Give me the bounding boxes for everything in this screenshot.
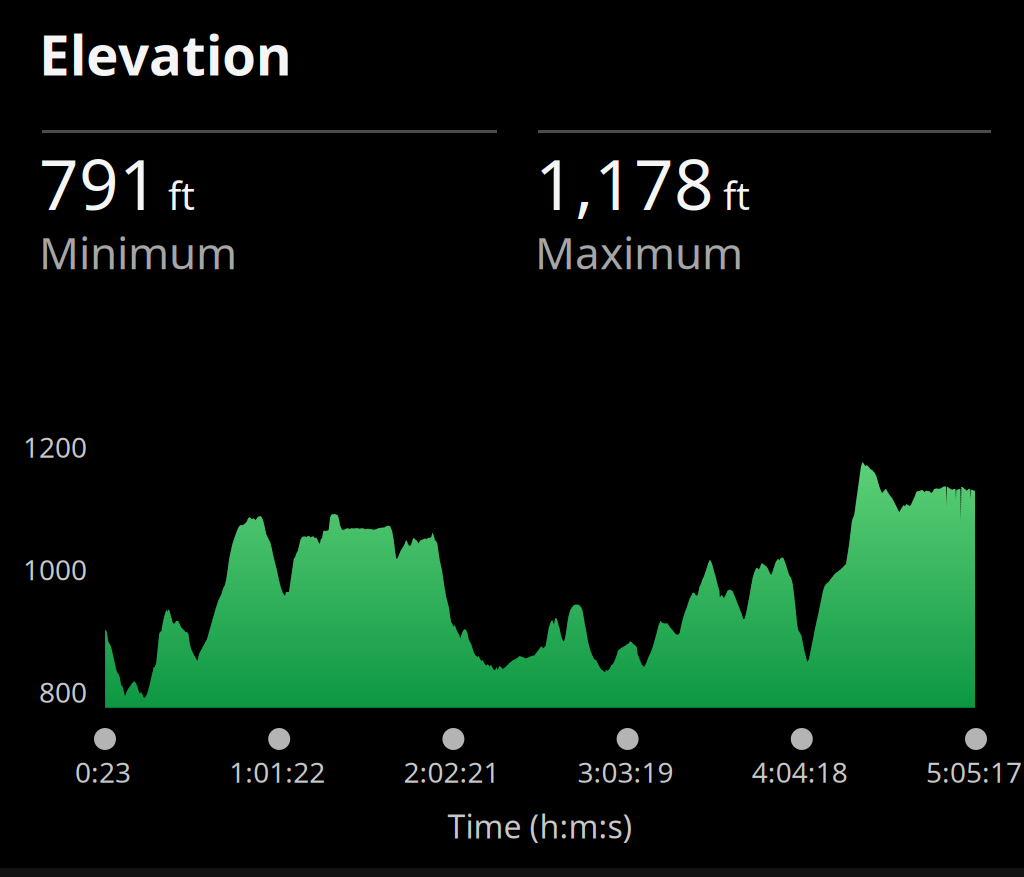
- staticText: 1:01:22: [229, 753, 325, 791]
- staticText: Elevation: [39, 18, 292, 91]
- staticText: Maximum: [535, 223, 743, 281]
- staticText: Minimum: [39, 223, 237, 281]
- staticText: ft: [723, 169, 750, 221]
- staticText: 1000: [23, 551, 87, 588]
- button[interactable]: 791: [39, 137, 237, 281]
- staticText: ft: [168, 169, 195, 221]
- staticText: Time (h:m:s): [447, 805, 632, 847]
- staticText: 3:03:19: [578, 753, 674, 791]
- staticText: 1,178: [535, 137, 714, 229]
- staticText: 800: [39, 673, 87, 711]
- staticText: 4:04:18: [752, 753, 848, 791]
- staticText: 5:05:17: [926, 753, 1022, 791]
- staticText: 1200: [23, 428, 87, 466]
- button[interactable]: 1,178: [535, 137, 750, 281]
- staticText: 791: [39, 137, 159, 229]
- staticText: 0:23: [75, 753, 131, 791]
- staticText: 2:02:21: [403, 753, 499, 791]
